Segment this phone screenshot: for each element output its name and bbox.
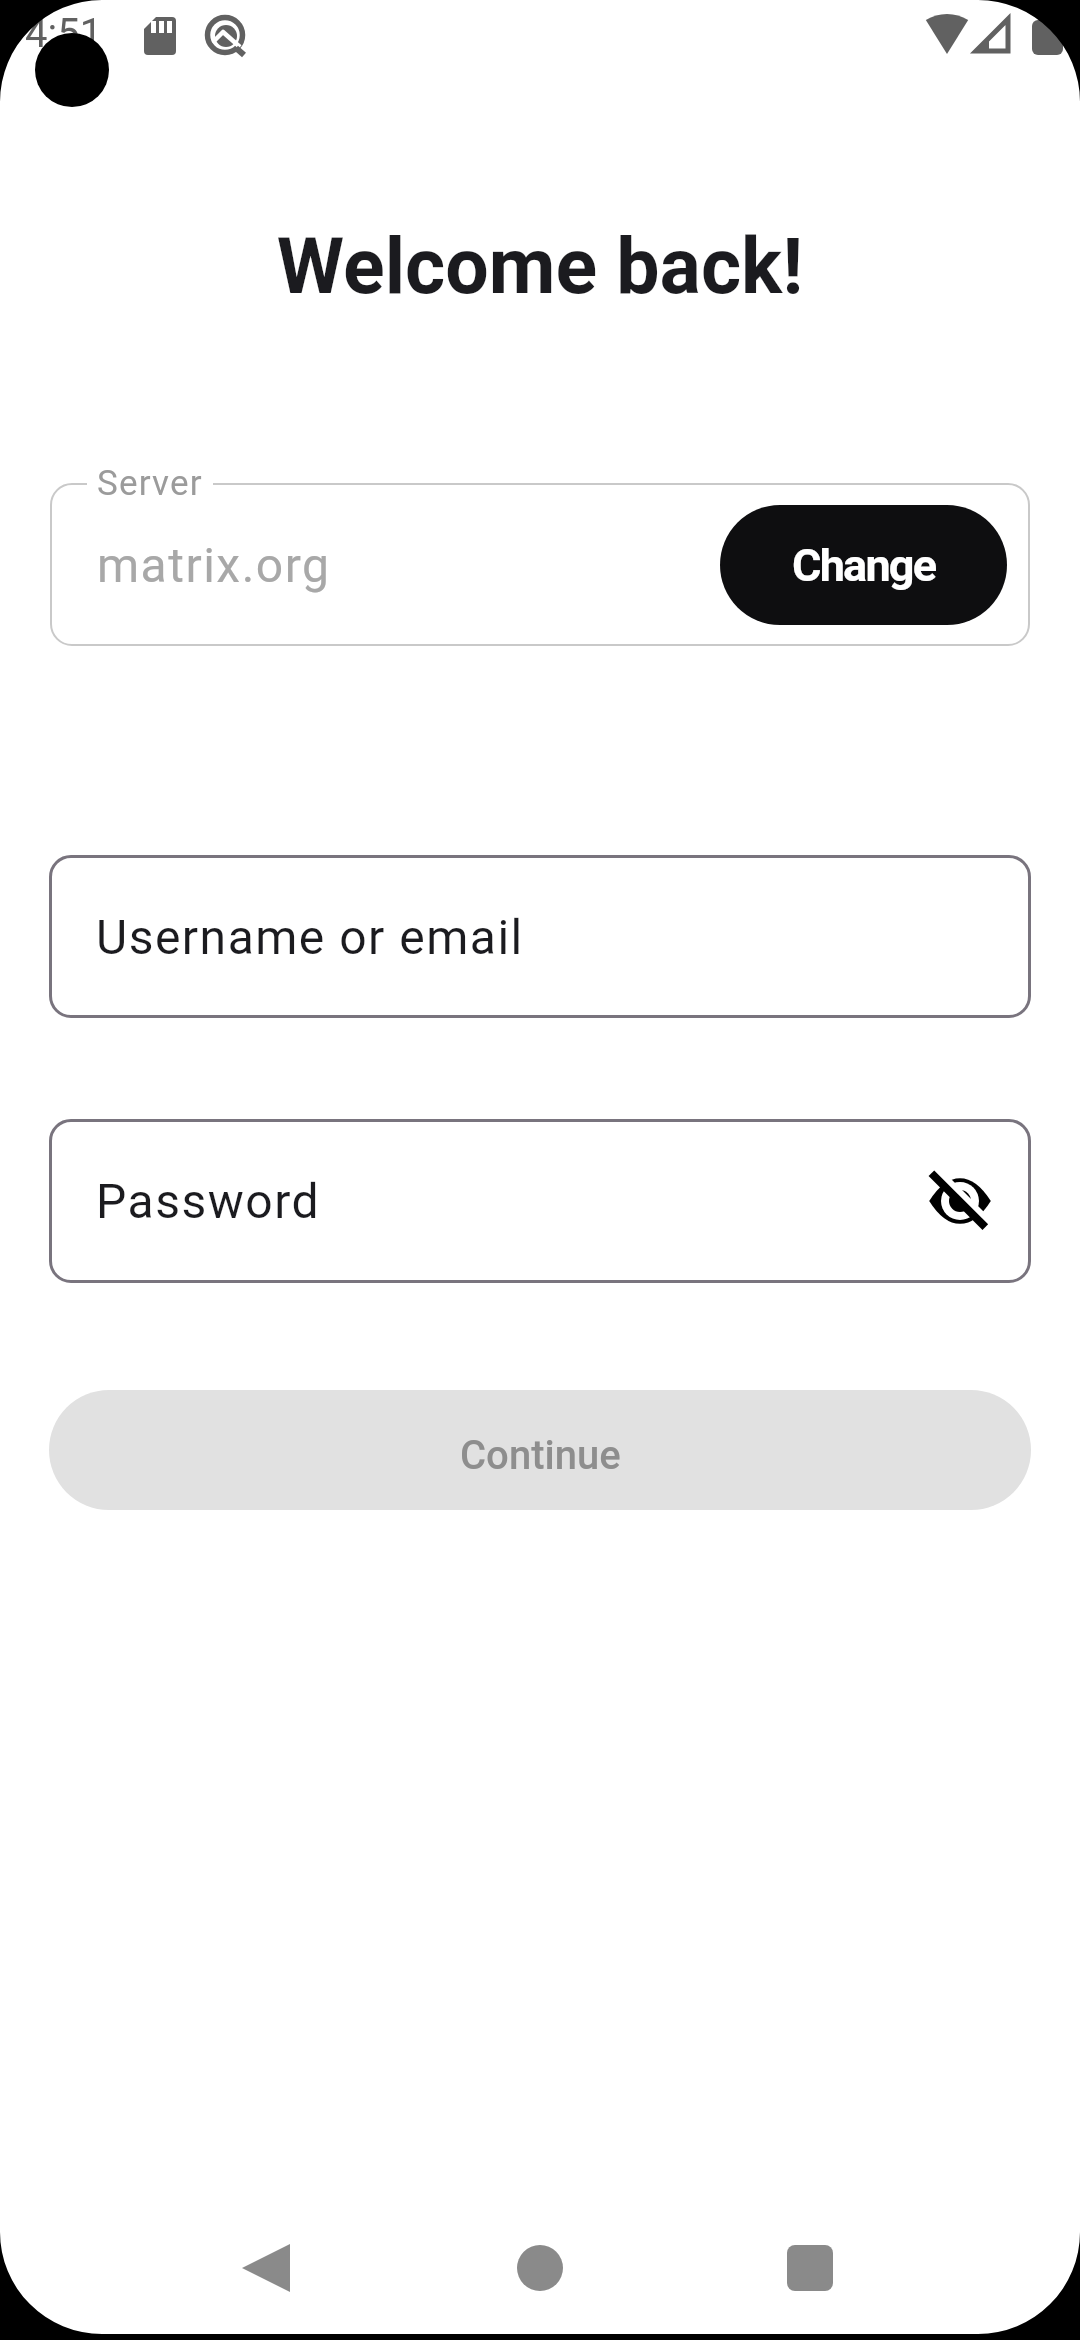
staticText: Username or email: [96, 909, 524, 965]
button[interactable]: [927, 1168, 993, 1234]
staticText: Password: [96, 1173, 321, 1229]
button[interactable]: Password: [49, 1119, 1031, 1283]
button[interactable]: [218, 2220, 314, 2316]
button[interactable]: matrix.org: [50, 483, 1030, 646]
button[interactable]: Change: [720, 505, 1007, 625]
button[interactable]: [762, 2220, 858, 2316]
staticText: Welcome back!: [0, 222, 1080, 312]
staticText: matrix.org: [97, 537, 331, 593]
button[interactable]: Continue: [49, 1390, 1031, 1510]
staticText: Change: [792, 539, 936, 592]
staticText: Server: [97, 463, 203, 504]
staticText: 4:51: [25, 10, 103, 57]
button[interactable]: [492, 2220, 588, 2316]
staticText: Continue: [460, 1432, 621, 1479]
button[interactable]: Username or email: [49, 855, 1031, 1018]
